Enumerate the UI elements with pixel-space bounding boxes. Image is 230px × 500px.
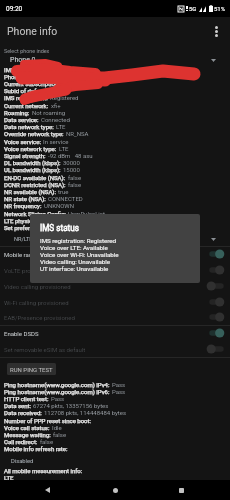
staticText: Phone 0: [10, 56, 36, 64]
staticText: EN-DC available (NSA):: [4, 174, 66, 181]
staticText: Voice over LTE: Available: [40, 244, 108, 251]
staticText: NR_NSA: [66, 130, 89, 137]
staticText: RUN PING TEST: [10, 366, 53, 373]
button[interactable]: Home: [104, 480, 126, 500]
staticText: Idle: [52, 424, 62, 431]
staticText: Mobile info refresh rate:: [4, 445, 68, 452]
staticText: NR available (NSA):: [4, 188, 56, 195]
button[interactable]: EAB/Presence provisioned: [0, 309, 230, 325]
button[interactable]: Wi-Fi calling provisioned: [0, 294, 230, 310]
button[interactable]: VoLTE provisioned: [0, 262, 230, 278]
button[interactable]: Recent apps: [170, 480, 192, 500]
staticText: xfi+: [51, 102, 61, 109]
staticText: IMS registration: Registered: [40, 237, 117, 244]
staticText: Voice network type:: [4, 145, 57, 152]
button[interactable]: Video calling provisioned: [0, 278, 230, 294]
staticText: Network Slicing Config:: [4, 210, 66, 217]
staticText: 112708 pkts, 114448484 bytes: [44, 409, 127, 416]
staticText: false: [53, 431, 67, 438]
staticText: true: [58, 188, 69, 195]
staticText: IMS status: [40, 223, 80, 233]
staticText: Current subscription:: [4, 80, 60, 87]
staticText: NR frequency:: [4, 202, 42, 209]
staticText: Pass: [51, 395, 65, 402]
staticText: Override network type:: [4, 130, 64, 137]
staticText: UrspRulesList: [68, 210, 105, 217]
button[interactable]: RUN PING TEST: [7, 363, 56, 375]
staticText: 30000: [63, 159, 80, 166]
staticText: Phone info: [7, 25, 58, 37]
staticText: DL bandwidth (kbps):: [4, 159, 61, 166]
staticText: Roaming:: [4, 109, 30, 116]
staticText: Call redirect:: [4, 438, 38, 445]
staticText: LTE physical channel config:: [4, 217, 79, 224]
staticText: Pass: [112, 388, 126, 395]
staticText: Voice service:: [4, 138, 41, 145]
staticText: DCNR restricted (NSA):: [4, 181, 66, 188]
staticText: false: [68, 174, 82, 181]
staticText: Registered: [50, 94, 79, 101]
staticText: false: [68, 181, 82, 188]
staticText: Message waiting:: [4, 431, 51, 438]
staticText: Video calling: Unavailable: [40, 258, 111, 265]
staticText: IMEI:: [4, 66, 18, 73]
button[interactable]: Phone 0: [0, 55, 230, 65]
staticText: CONNECTED: [48, 195, 83, 202]
staticText: LTE: [4, 474, 14, 481]
staticText: Data service:: [4, 116, 39, 123]
staticText: 09:20: [6, 5, 23, 13]
staticText: Disabled: [11, 458, 34, 465]
staticText: UT interface: Unavailable: [40, 265, 109, 272]
staticText: In service: [43, 138, 69, 145]
staticText: Data sent:: [4, 402, 31, 409]
staticText: Not roaming: [32, 109, 66, 116]
button[interactable]: Set removable eSIM as default: [0, 341, 230, 357]
button[interactable]: NR/LTE/TDSCDMA/CDMA/EVDO/GSM/WCDMA: [0, 234, 230, 244]
staticText: false: [40, 438, 54, 445]
staticText: Pass: [112, 381, 126, 388]
staticText: Connected: [41, 116, 70, 123]
staticText: Voice call status:: [4, 424, 50, 431]
staticText: Subid of default data:: [4, 87, 62, 94]
staticText: NR/LTE/TDSCDMA/CDMA/EVDO/GSM/WCDMA: [14, 236, 134, 243]
button[interactable]: More options: [205, 20, 227, 42]
staticText: Enable DSDS: [4, 330, 39, 337]
staticText: Voice over Wi-Fi: Unavailable: [40, 251, 119, 258]
staticText: NR state (NSA):: [4, 195, 46, 202]
staticText: LTE: [59, 145, 69, 152]
staticText: Signal strength:: [4, 152, 46, 159]
staticText: IMS registration:: [4, 94, 48, 101]
staticText: EAB/Presence provisioned: [4, 314, 75, 321]
staticText: UNKNOWN: [44, 202, 74, 209]
staticText: Current network:: [4, 102, 49, 109]
staticText: Data network type:: [4, 123, 54, 130]
staticText: 67274 pkts, 13357156 bytes: [33, 402, 109, 409]
staticText: Ping hostname(www.google.com) IPv4:: [4, 381, 110, 388]
button[interactable]: Mobile radio power: [0, 246, 230, 262]
staticText: 5G: [189, 5, 197, 12]
staticText: Phone number:: [4, 73, 45, 80]
staticText: Video calling provisioned: [4, 283, 71, 290]
staticText: Wi-Fi calling provisioned: [4, 299, 69, 306]
staticText: 15000: [63, 166, 80, 173]
staticText: Set preferred network type:: [4, 224, 76, 231]
staticText: Select phone index: [4, 48, 50, 54]
staticText: VoLTE provisioned: [4, 267, 53, 274]
staticText: UL bandwidth (kbps):: [4, 166, 61, 173]
staticText: Data received:: [4, 409, 42, 416]
staticText: Mobile radio power: [4, 251, 56, 258]
staticText: All mobile measurement info:: [4, 467, 83, 474]
staticText: Set removable eSIM as default: [4, 346, 86, 353]
staticText: Number of PPP reset since boot:: [4, 417, 91, 424]
staticText: HTTP client test:: [4, 395, 49, 402]
staticText: -92 dBm 48 asu: [48, 152, 93, 159]
staticText: Ping hostname(www.google.com) IPv6:: [4, 388, 110, 395]
button[interactable]: Enable DSDS: [0, 325, 230, 341]
staticText: LTE: [56, 123, 66, 130]
staticText: 51%: [214, 5, 226, 12]
button[interactable]: Back: [36, 480, 58, 500]
